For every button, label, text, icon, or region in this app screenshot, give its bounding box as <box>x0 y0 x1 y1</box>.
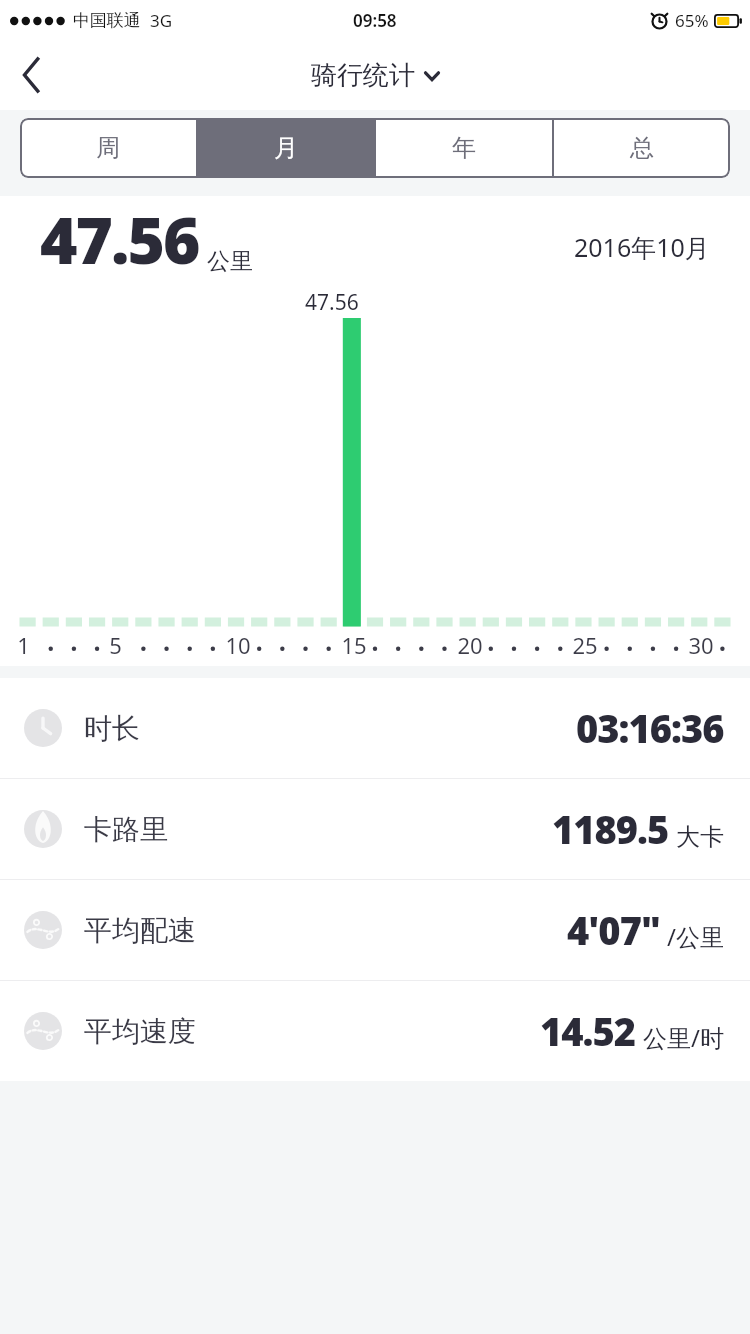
button[interactable]: 周 <box>20 118 196 178</box>
staticText: 47.56 <box>40 196 199 282</box>
button[interactable]: 骑行统计 <box>311 59 440 92</box>
staticText: 总 <box>630 133 654 163</box>
button[interactable]: 平均配速 <box>0 880 750 980</box>
staticText: 14.52 <box>540 1005 636 1057</box>
staticText: 1189.5 <box>552 803 669 855</box>
button[interactable]: 月 <box>198 118 374 178</box>
staticText: 1 <box>17 630 30 660</box>
staticText: 平均速度 <box>84 1014 196 1049</box>
button[interactable]: 卡路里 <box>0 779 750 879</box>
staticText: 03:16:36 <box>576 702 724 754</box>
staticText: /公里 <box>667 920 724 953</box>
staticText: 平均配速 <box>84 913 196 948</box>
staticText: 公里/时 <box>643 1021 724 1054</box>
staticText: 25 <box>572 630 598 660</box>
staticText: 10 <box>225 630 251 660</box>
staticText: 年 <box>452 133 476 163</box>
staticText: 20 <box>457 630 483 660</box>
staticText: 骑行统计 <box>311 59 415 92</box>
staticText: 大卡 <box>676 822 724 852</box>
staticText: 47.56 <box>305 288 359 317</box>
button[interactable]: 平均速度 <box>0 981 750 1081</box>
staticText: 2016年10月 <box>574 230 710 264</box>
button[interactable]: 总 <box>554 118 730 178</box>
button[interactable]: 时长 <box>0 678 750 778</box>
staticText: 09:58 <box>353 9 397 32</box>
staticText: 3G <box>150 9 173 32</box>
staticText: 5 <box>109 630 122 660</box>
staticText: 中国联通 <box>73 10 141 31</box>
staticText: 时长 <box>84 711 140 746</box>
staticText: 30 <box>688 630 714 660</box>
staticText: 15 <box>341 630 367 660</box>
staticText: 周 <box>96 133 120 163</box>
button[interactable]: Back <box>0 43 64 107</box>
staticText: 4'07" <box>567 904 660 956</box>
staticText: 卡路里 <box>84 812 168 847</box>
button[interactable]: 年 <box>376 118 552 178</box>
staticText: 月 <box>274 133 298 163</box>
staticText: 65% <box>675 9 709 32</box>
staticText: 公里 <box>207 247 253 276</box>
